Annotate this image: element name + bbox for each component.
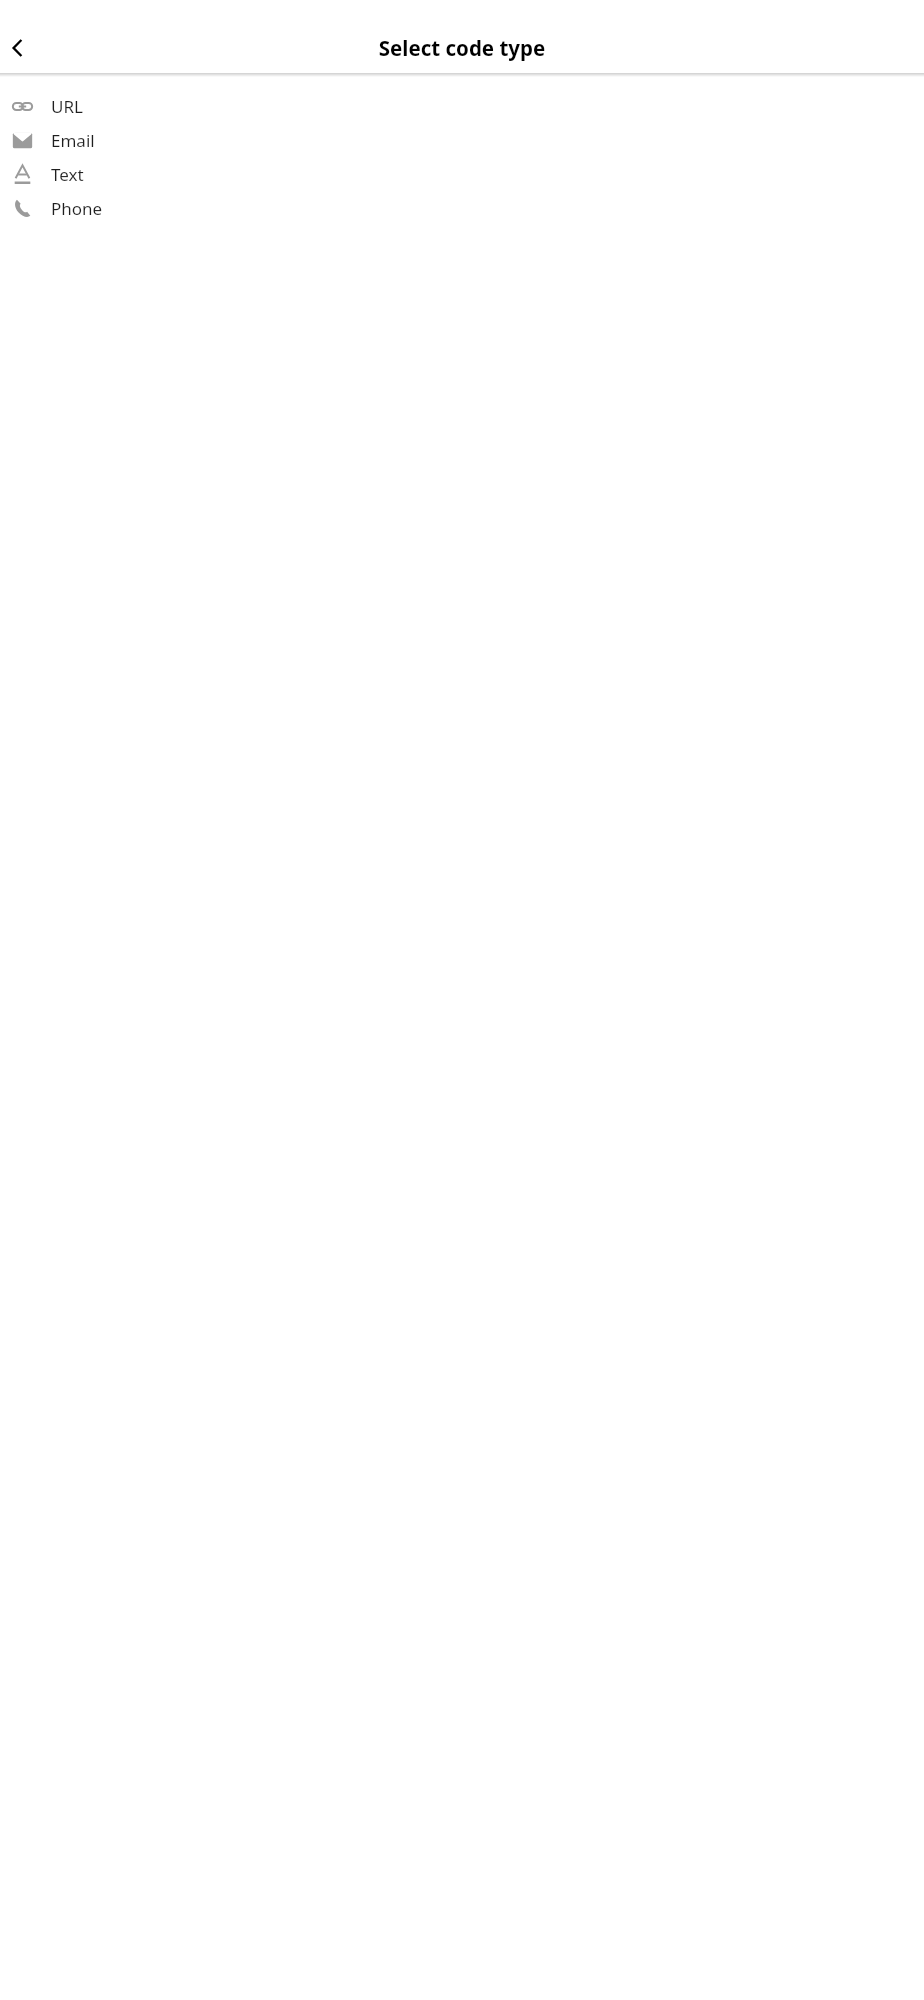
staticText: Phone [51, 197, 103, 220]
staticText: Text [51, 163, 84, 186]
button[interactable]: Back [1, 32, 33, 64]
button[interactable]: URL [0, 89, 924, 123]
staticText: URL [51, 95, 83, 118]
staticText: Select code type [0, 34, 924, 62]
staticText: Email [51, 129, 95, 152]
button[interactable]: Phone [0, 191, 924, 225]
button[interactable]: Text [0, 157, 924, 191]
button[interactable]: Email [0, 123, 924, 157]
